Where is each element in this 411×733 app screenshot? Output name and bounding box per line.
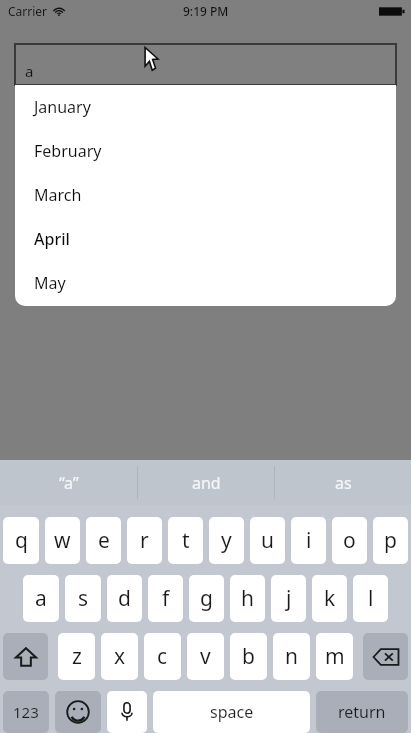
button[interactable]: a [15,44,396,85]
staticText: March [34,184,82,206]
staticText: 9:19 PM [183,3,229,19]
button[interactable]: March [15,173,396,217]
button[interactable]: and [138,460,274,505]
staticText: space [210,701,254,723]
button[interactable]: d [107,575,142,622]
staticText: z [72,642,82,671]
button[interactable]: January [15,85,396,129]
button[interactable]: s [65,575,101,622]
staticText: m [325,642,345,671]
staticText: l [368,584,374,613]
button[interactable]: o [332,517,367,564]
button[interactable]: j [271,575,306,622]
staticText: as [335,472,352,494]
staticText: v [200,642,211,671]
staticText: January [34,96,91,118]
button[interactable]: “a” [0,460,137,505]
button[interactable]: t [168,517,203,564]
button[interactable]: Backspace [363,633,408,680]
staticText: e [98,526,110,555]
button[interactable]: m [316,633,353,680]
button[interactable]: return [316,691,408,733]
staticText: t [182,526,190,555]
button[interactable]: May [15,261,396,305]
button[interactable]: Dictate [107,691,147,733]
button[interactable]: p [373,517,408,564]
button[interactable]: h [230,575,265,622]
button[interactable]: February [15,129,396,173]
button[interactable]: k [312,575,347,622]
button[interactable]: v [187,633,224,680]
button[interactable]: c [144,633,181,680]
button[interactable]: n [273,633,310,680]
button[interactable]: 123 [3,691,49,733]
staticText: February [34,140,102,162]
staticText: j [286,584,292,613]
staticText: and [192,472,221,494]
staticText: n [285,642,298,671]
staticText: k [324,584,336,613]
button[interactable]: u [250,517,285,564]
staticText: a [25,61,34,81]
staticText: p [384,526,397,555]
button[interactable]: l [353,575,388,622]
staticText: q [15,526,28,555]
staticText: g [200,584,213,613]
staticText: April [34,228,70,250]
button[interactable]: a [23,575,59,622]
staticText: a [35,584,47,613]
button[interactable]: Emoji [55,691,101,733]
button[interactable]: April [15,217,396,261]
staticText: o [343,526,356,555]
staticText: x [114,642,126,671]
staticText: f [162,584,170,613]
button[interactable]: b [230,633,267,680]
button[interactable]: i [291,517,326,564]
staticText: h [241,584,254,613]
staticText: s [78,584,89,613]
button[interactable]: f [148,575,183,622]
button[interactable]: z [58,633,95,680]
staticText: w [54,526,71,555]
staticText: b [242,642,255,671]
staticText: “a” [59,472,79,494]
staticText: c [157,642,168,671]
button[interactable]: e [86,517,121,564]
staticText: r [140,526,149,555]
staticText: return [338,701,386,723]
staticText: y [221,526,232,555]
staticText: Carrier [8,3,48,19]
staticText: d [118,584,131,613]
staticText: 123 [13,702,39,722]
button[interactable]: q [3,517,39,564]
staticText: May [34,272,66,294]
button[interactable]: space [153,691,310,733]
button[interactable]: r [127,517,162,564]
button[interactable]: x [101,633,138,680]
button[interactable]: as [275,460,411,505]
button[interactable]: y [209,517,244,564]
button[interactable]: Shift [3,633,48,680]
button[interactable]: g [189,575,224,622]
staticText: i [306,526,312,555]
button[interactable]: w [45,517,80,564]
staticText: u [261,526,274,555]
